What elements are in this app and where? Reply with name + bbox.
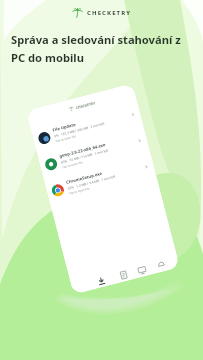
staticText: 33% 1.2 MB / 3.4 MB 1 min left <box>67 175 116 191</box>
staticText: CHECKETRY <box>87 9 132 17</box>
staticText: Tap to open file <box>62 160 83 169</box>
button[interactable]: CHECKETRY <box>72 7 132 18</box>
button[interactable]: Devices <box>135 264 149 276</box>
staticText: Tap to open file <box>69 186 90 195</box>
button[interactable]: Downloads <box>91 274 112 289</box>
button[interactable]: ChromeSetup.exe <box>49 153 152 204</box>
button[interactable]: gimp-2.9.22-x86_64.exe <box>42 127 145 178</box>
staticText: Správa a sledování stahování z PC do mob… <box>11 32 181 65</box>
staticText: gimp-2.9.22-x86_64.exe <box>59 142 107 160</box>
staticText: CHECKETRY <box>75 100 96 110</box>
staticText: Downloads <box>96 284 110 289</box>
staticText: 65% 74 MB / 114 MB 1 min left <box>61 148 109 165</box>
staticText: File Update <box>52 122 77 134</box>
staticText: ChromeSetup.exe <box>66 171 103 186</box>
staticText: Tap to open file <box>55 134 76 143</box>
button[interactable]: Notifications <box>154 259 169 271</box>
button[interactable]: File Update <box>35 101 139 152</box>
staticText: 0% 167.3 MB / 345 MB 2 min left <box>54 122 105 138</box>
button[interactable]: Files <box>116 269 131 281</box>
